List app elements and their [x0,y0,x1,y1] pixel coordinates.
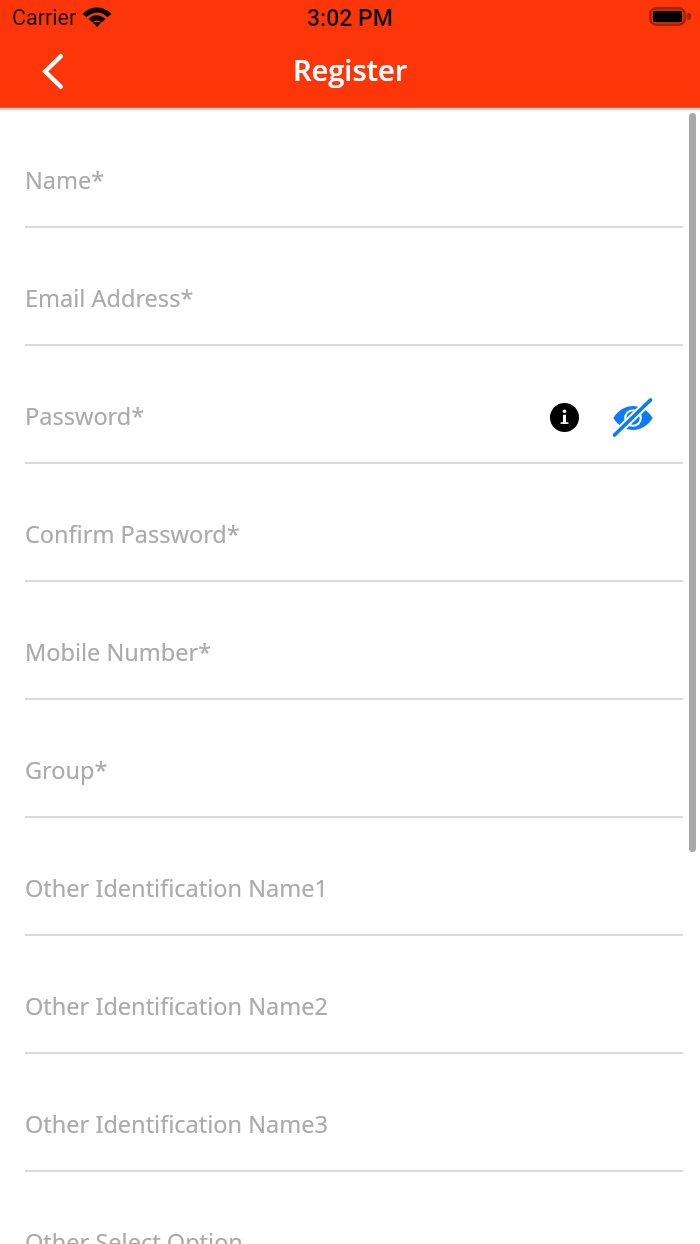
button[interactable]: Password requirements info [542,395,586,439]
staticText: 3:02 PM [307,5,393,32]
staticText: Name* [25,164,105,196]
button[interactable]: Show password [605,390,661,446]
staticText: Other Select Option [25,1226,243,1244]
staticText: Confirm Password* [25,518,240,550]
button[interactable]: Other Identification Name3 [0,1052,700,1172]
staticText: Mobile Number* [25,636,212,668]
button[interactable]: Other Identification Name1 [0,816,700,936]
staticText: Other Identification Name1 [25,872,328,904]
button[interactable]: Back [23,41,83,101]
button[interactable]: Name* [0,113,700,228]
button[interactable]: Other Identification Name2 [0,934,700,1054]
button[interactable]: Group* [0,698,700,818]
button[interactable]: Confirm Password* [0,462,700,582]
staticText: Password* [25,400,145,432]
staticText: Carrier [12,5,77,30]
button[interactable]: Email Address* [0,226,700,346]
button[interactable]: Password* [0,344,700,464]
button[interactable]: Mobile Number* [0,580,700,700]
staticText: Other Identification Name2 [25,990,328,1022]
button[interactable]: Other Select Option [0,1170,700,1244]
staticText: Register [293,50,408,89]
staticText: Group* [25,754,108,786]
staticText: Email Address* [25,282,194,314]
staticText: Other Identification Name3 [25,1108,328,1140]
